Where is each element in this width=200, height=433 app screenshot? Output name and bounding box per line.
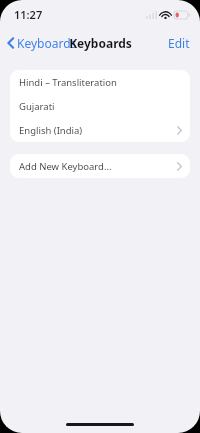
staticText: Add New Keyboard...	[19, 160, 177, 173]
staticText: Keyboards	[69, 35, 132, 51]
other: More	[177, 126, 182, 135]
staticText: Gujarati	[19, 100, 182, 113]
staticText: Edit	[168, 35, 190, 51]
staticText: Hindi – Transliteration	[19, 76, 182, 89]
staticText: English (India)	[19, 124, 177, 137]
button[interactable]: Edit	[158, 30, 200, 56]
other: More	[177, 162, 182, 171]
button[interactable]: Keyboards	[0, 31, 83, 55]
button[interactable]: English (India)	[10, 118, 190, 142]
button[interactable]: Add New Keyboard...	[10, 154, 190, 178]
staticText: Keyboards	[17, 35, 77, 51]
button[interactable]: Hindi – Transliteration	[10, 70, 190, 94]
button[interactable]: Gujarati	[10, 94, 190, 118]
staticText: 11:27	[14, 7, 43, 22]
